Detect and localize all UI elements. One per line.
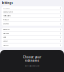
button[interactable]: Privacy [2,18,62,22]
staticText: Privacy [3,19,9,21]
staticText: Sounds [3,23,9,25]
staticText: About [3,40,7,42]
staticText: nickname [24,59,39,62]
staticText: Account [3,7,9,9]
staticText: Settings [2,1,13,5]
button[interactable]: General [2,28,62,32]
button[interactable]: Appearance [2,10,62,14]
staticText: Help [3,36,6,38]
staticText: Choose your [23,55,41,59]
staticText: Appearance [3,11,13,13]
staticText: Others will see this name [24,65,39,67]
staticText: Storage [3,32,9,34]
staticText: General [3,29,9,30]
staticText: Notifications [3,15,11,17]
button[interactable]: Storage [2,32,62,35]
button[interactable]: Sounds [2,22,62,26]
staticText: Sign out [3,44,8,46]
button[interactable]: Account [2,6,62,10]
button[interactable]: Help [2,35,62,39]
button[interactable]: Notifications [2,14,62,18]
button[interactable]: Sign out [2,43,62,47]
button[interactable]: About [2,39,62,43]
